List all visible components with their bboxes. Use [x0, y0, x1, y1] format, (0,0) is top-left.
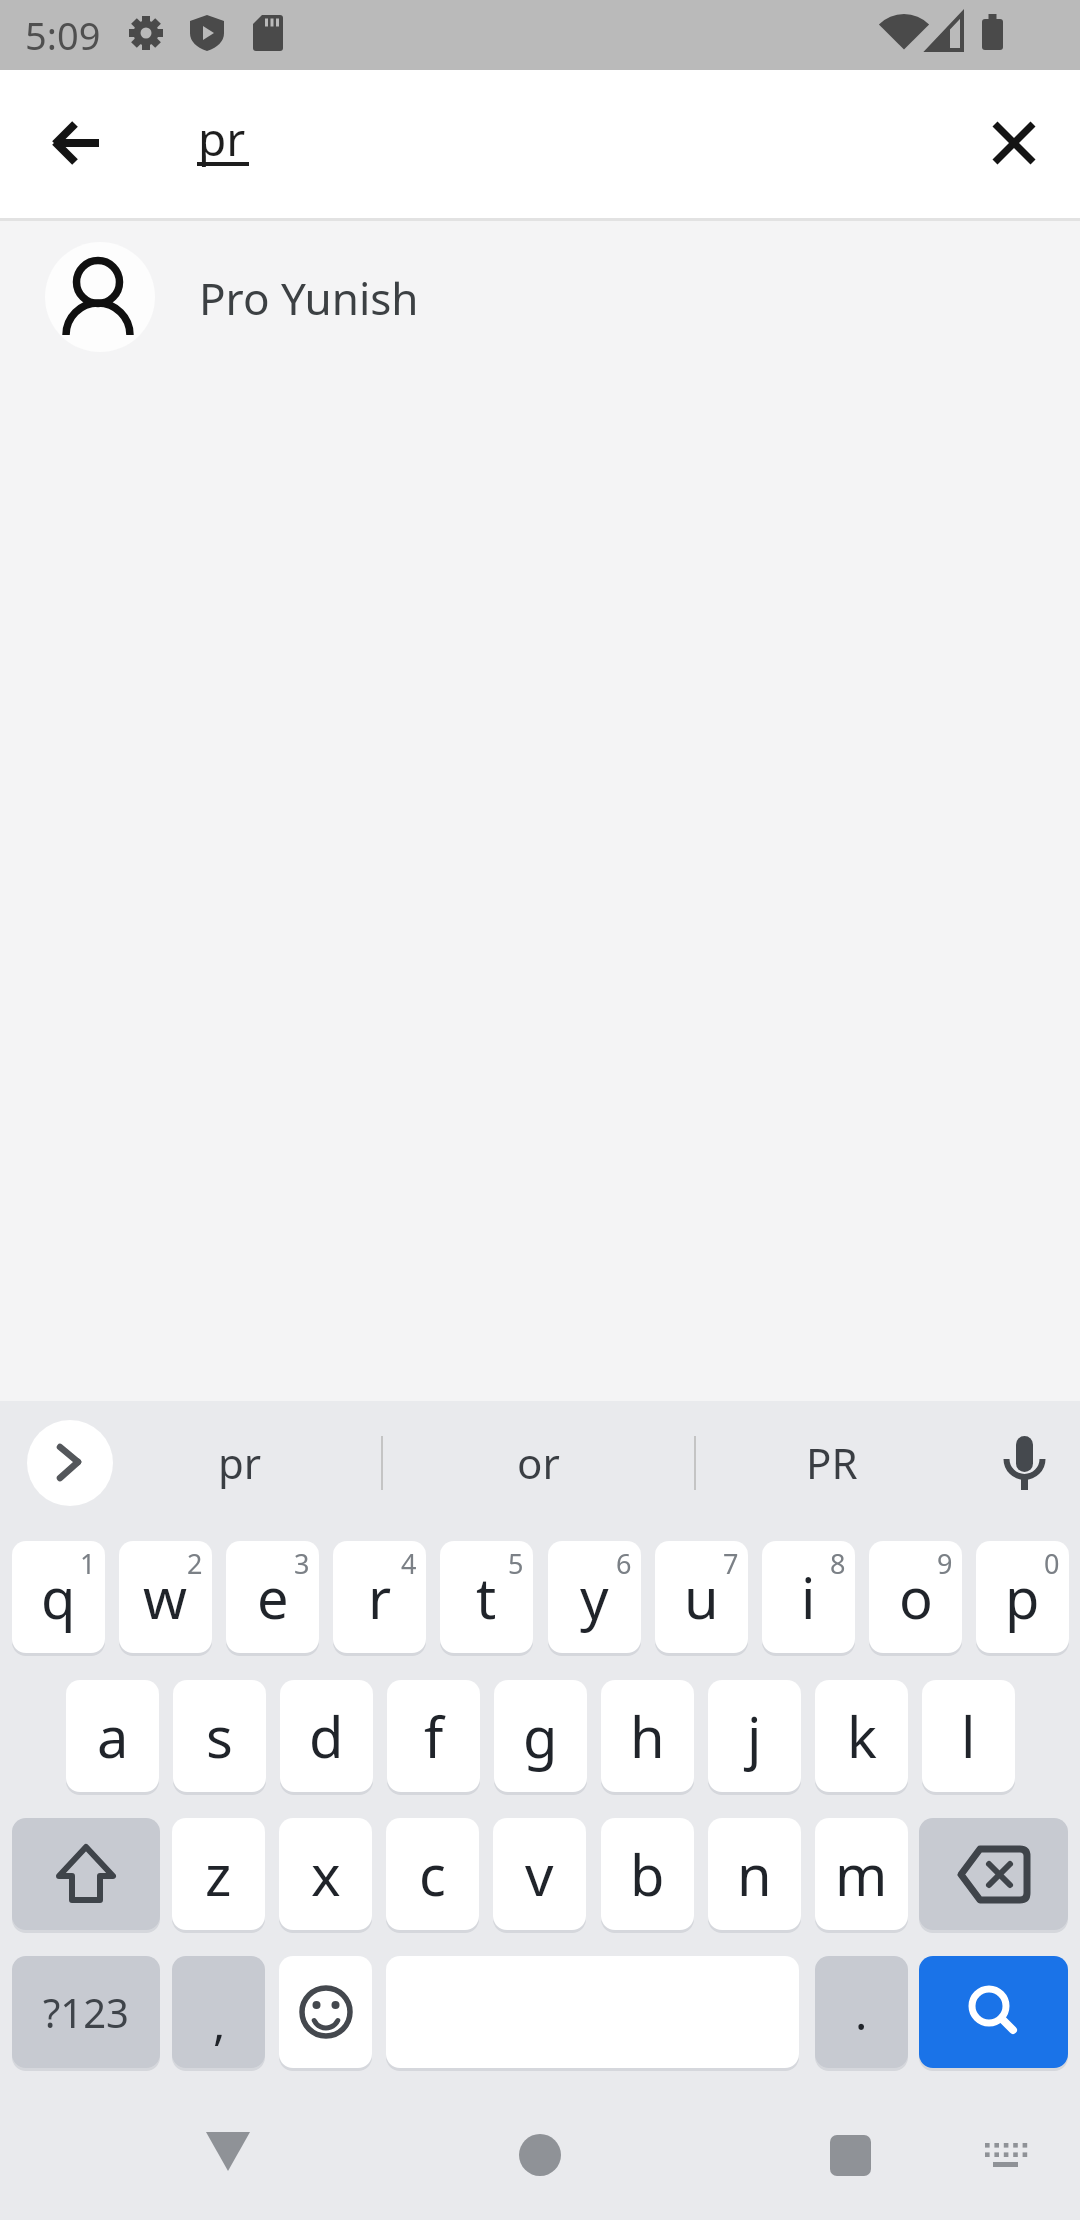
staticText: e — [257, 1559, 289, 1635]
staticText: o — [899, 1559, 933, 1635]
button[interactable]: o — [869, 1541, 962, 1653]
button[interactable]: g — [494, 1680, 587, 1792]
button[interactable] — [12, 1818, 160, 1930]
staticText: PR — [806, 1434, 858, 1491]
staticText: or — [517, 1434, 560, 1491]
staticText: 3 — [294, 1545, 310, 1582]
button[interactable] — [919, 1956, 1068, 2068]
staticText: f — [424, 1698, 444, 1774]
button[interactable]: PR — [682, 1418, 982, 1506]
button[interactable]: e — [226, 1541, 319, 1653]
staticText: 4 — [401, 1545, 417, 1582]
staticText: s — [206, 1698, 233, 1774]
staticText: x — [311, 1836, 341, 1912]
button[interactable] — [967, 96, 1061, 190]
button[interactable]: h — [601, 1680, 694, 1792]
staticText: a — [97, 1698, 129, 1774]
staticText: j — [747, 1698, 762, 1774]
button[interactable]: s — [173, 1680, 266, 1792]
button[interactable]: q — [12, 1541, 105, 1653]
button[interactable]: z — [172, 1818, 265, 1930]
button[interactable]: j — [708, 1680, 801, 1792]
button[interactable] — [279, 1956, 372, 2068]
button[interactable] — [488, 2120, 592, 2190]
button[interactable] — [27, 1420, 113, 1506]
staticText: pr — [198, 107, 246, 170]
staticText: , — [213, 1991, 226, 2054]
staticText: 5 — [508, 1545, 524, 1582]
staticText: y — [580, 1559, 609, 1635]
button[interactable]: f — [387, 1680, 480, 1792]
staticText: 9 — [937, 1545, 953, 1582]
staticText: c — [419, 1836, 446, 1912]
staticText: 5:09 — [25, 9, 101, 61]
button[interactable]: a — [66, 1680, 159, 1792]
staticText: Pro Yunish — [199, 268, 419, 328]
staticText: v — [525, 1836, 554, 1912]
staticText: h — [630, 1698, 665, 1774]
button[interactable]: t — [440, 1541, 533, 1653]
button[interactable]: , — [172, 1956, 265, 2068]
staticText: 7 — [723, 1545, 739, 1582]
button[interactable]: l — [922, 1680, 1015, 1792]
staticText: 8 — [830, 1545, 846, 1582]
button[interactable]: pr — [90, 1418, 390, 1506]
staticText: i — [801, 1559, 816, 1635]
staticText: d — [309, 1698, 344, 1774]
staticText: 6 — [616, 1545, 632, 1582]
button[interactable]: r — [333, 1541, 426, 1653]
button[interactable]: ?123 — [12, 1956, 160, 2068]
button[interactable] — [976, 2127, 1036, 2183]
staticText: l — [961, 1698, 976, 1774]
button[interactable]: n — [708, 1818, 801, 1930]
button[interactable]: k — [815, 1680, 908, 1792]
staticText: p — [1005, 1559, 1040, 1635]
button[interactable] — [30, 96, 124, 190]
staticText: z — [205, 1836, 232, 1912]
staticText: t — [476, 1559, 497, 1635]
button[interactable] — [0, 232, 1080, 362]
staticText: 2 — [187, 1545, 203, 1582]
button[interactable] — [996, 1428, 1052, 1498]
button[interactable] — [798, 2120, 902, 2190]
staticText: u — [684, 1559, 719, 1635]
button[interactable]: c — [386, 1818, 479, 1930]
button[interactable]: u — [655, 1541, 748, 1653]
staticText: 0 — [1044, 1545, 1060, 1582]
button[interactable]: p — [976, 1541, 1069, 1653]
staticText: q — [41, 1559, 76, 1635]
staticText: m — [835, 1836, 888, 1912]
button[interactable]: or — [388, 1418, 688, 1506]
button[interactable]: m — [815, 1818, 908, 1930]
button[interactable]: . — [815, 1956, 908, 2068]
button[interactable]: b — [601, 1818, 694, 1930]
staticText: g — [523, 1698, 558, 1774]
button[interactable] — [176, 2116, 280, 2186]
staticText: n — [737, 1836, 772, 1912]
staticText: . — [855, 1981, 868, 2044]
button[interactable]: x — [279, 1818, 372, 1930]
staticText: k — [847, 1698, 877, 1774]
staticText: 1 — [80, 1545, 96, 1582]
staticText: ?123 — [43, 1985, 129, 2039]
staticText: b — [630, 1836, 665, 1912]
button[interactable] — [919, 1818, 1068, 1930]
staticText: w — [143, 1559, 188, 1635]
button[interactable]: v — [493, 1818, 586, 1930]
button[interactable]: y — [548, 1541, 641, 1653]
button[interactable]: d — [280, 1680, 373, 1792]
staticText: pr — [218, 1434, 262, 1491]
staticText: r — [368, 1559, 392, 1635]
button[interactable]: i — [762, 1541, 855, 1653]
button[interactable]: w — [119, 1541, 212, 1653]
